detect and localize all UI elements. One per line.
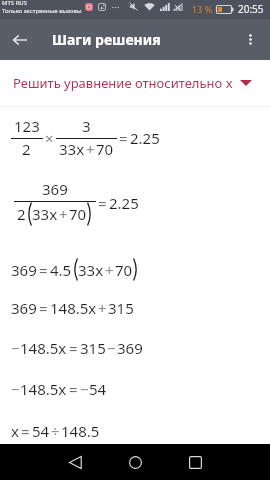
staticText: 315: [80, 338, 106, 358]
staticText: 148.5x: [50, 298, 97, 318]
staticText: +: [86, 139, 95, 159]
staticText: ×: [45, 128, 54, 148]
staticText: =: [21, 421, 30, 441]
staticText: +: [59, 204, 68, 224]
staticText: +: [105, 260, 114, 280]
staticText: 3: [82, 116, 91, 136]
staticText: =: [39, 298, 48, 318]
staticText: 2: [22, 139, 31, 159]
staticText: 148.5x: [20, 338, 67, 358]
staticText: Решить уравнение относительно x: [13, 74, 233, 92]
staticText: 70: [69, 204, 87, 224]
staticText: −: [11, 379, 20, 399]
staticText: 123: [14, 116, 40, 136]
staticText: x: [11, 421, 19, 441]
button[interactable]: Решить уравнение относительно x: [0, 60, 270, 106]
staticText: 315: [108, 298, 134, 318]
staticText: 369: [11, 260, 37, 280]
staticText: ÷: [51, 421, 60, 441]
staticText: 33x: [59, 139, 85, 159]
staticText: 369: [42, 179, 68, 199]
staticText: 2.25: [130, 128, 160, 148]
button[interactable]: More options: [230, 19, 270, 60]
staticText: 13 %: [192, 3, 213, 15]
staticText: 20:55: [238, 2, 264, 16]
staticText: 148.5: [61, 421, 100, 441]
staticText: 70: [115, 260, 133, 280]
staticText: =: [119, 128, 128, 148]
button[interactable]: Back: [0, 19, 40, 60]
button[interactable]: Recents: [165, 444, 226, 480]
staticText: MTS RUS: [2, 0, 28, 7]
staticText: 33x: [32, 204, 58, 224]
staticText: =: [69, 379, 78, 399]
staticText: Шаги решения: [52, 30, 161, 49]
button[interactable]: Home: [105, 444, 166, 480]
staticText: 369: [11, 298, 37, 318]
staticText: =: [98, 193, 107, 213]
staticText: =: [69, 338, 78, 358]
staticText: −: [107, 338, 116, 358]
staticText: =: [39, 260, 48, 280]
staticText: 70: [96, 139, 114, 159]
staticText: +: [98, 298, 107, 318]
staticText: 4.5: [50, 260, 72, 280]
staticText: 54: [89, 379, 107, 399]
staticText: 2.25: [109, 193, 139, 213]
staticText: 2: [17, 204, 26, 224]
staticText: 33x: [78, 260, 104, 280]
button[interactable]: Back: [45, 444, 106, 480]
staticText: 148.5x: [20, 379, 67, 399]
staticText: −: [11, 338, 20, 358]
staticText: Только экстренные вызовы: [2, 7, 82, 15]
staticText: 54: [32, 421, 50, 441]
staticText: 369: [117, 338, 143, 358]
staticText: −: [80, 379, 89, 399]
